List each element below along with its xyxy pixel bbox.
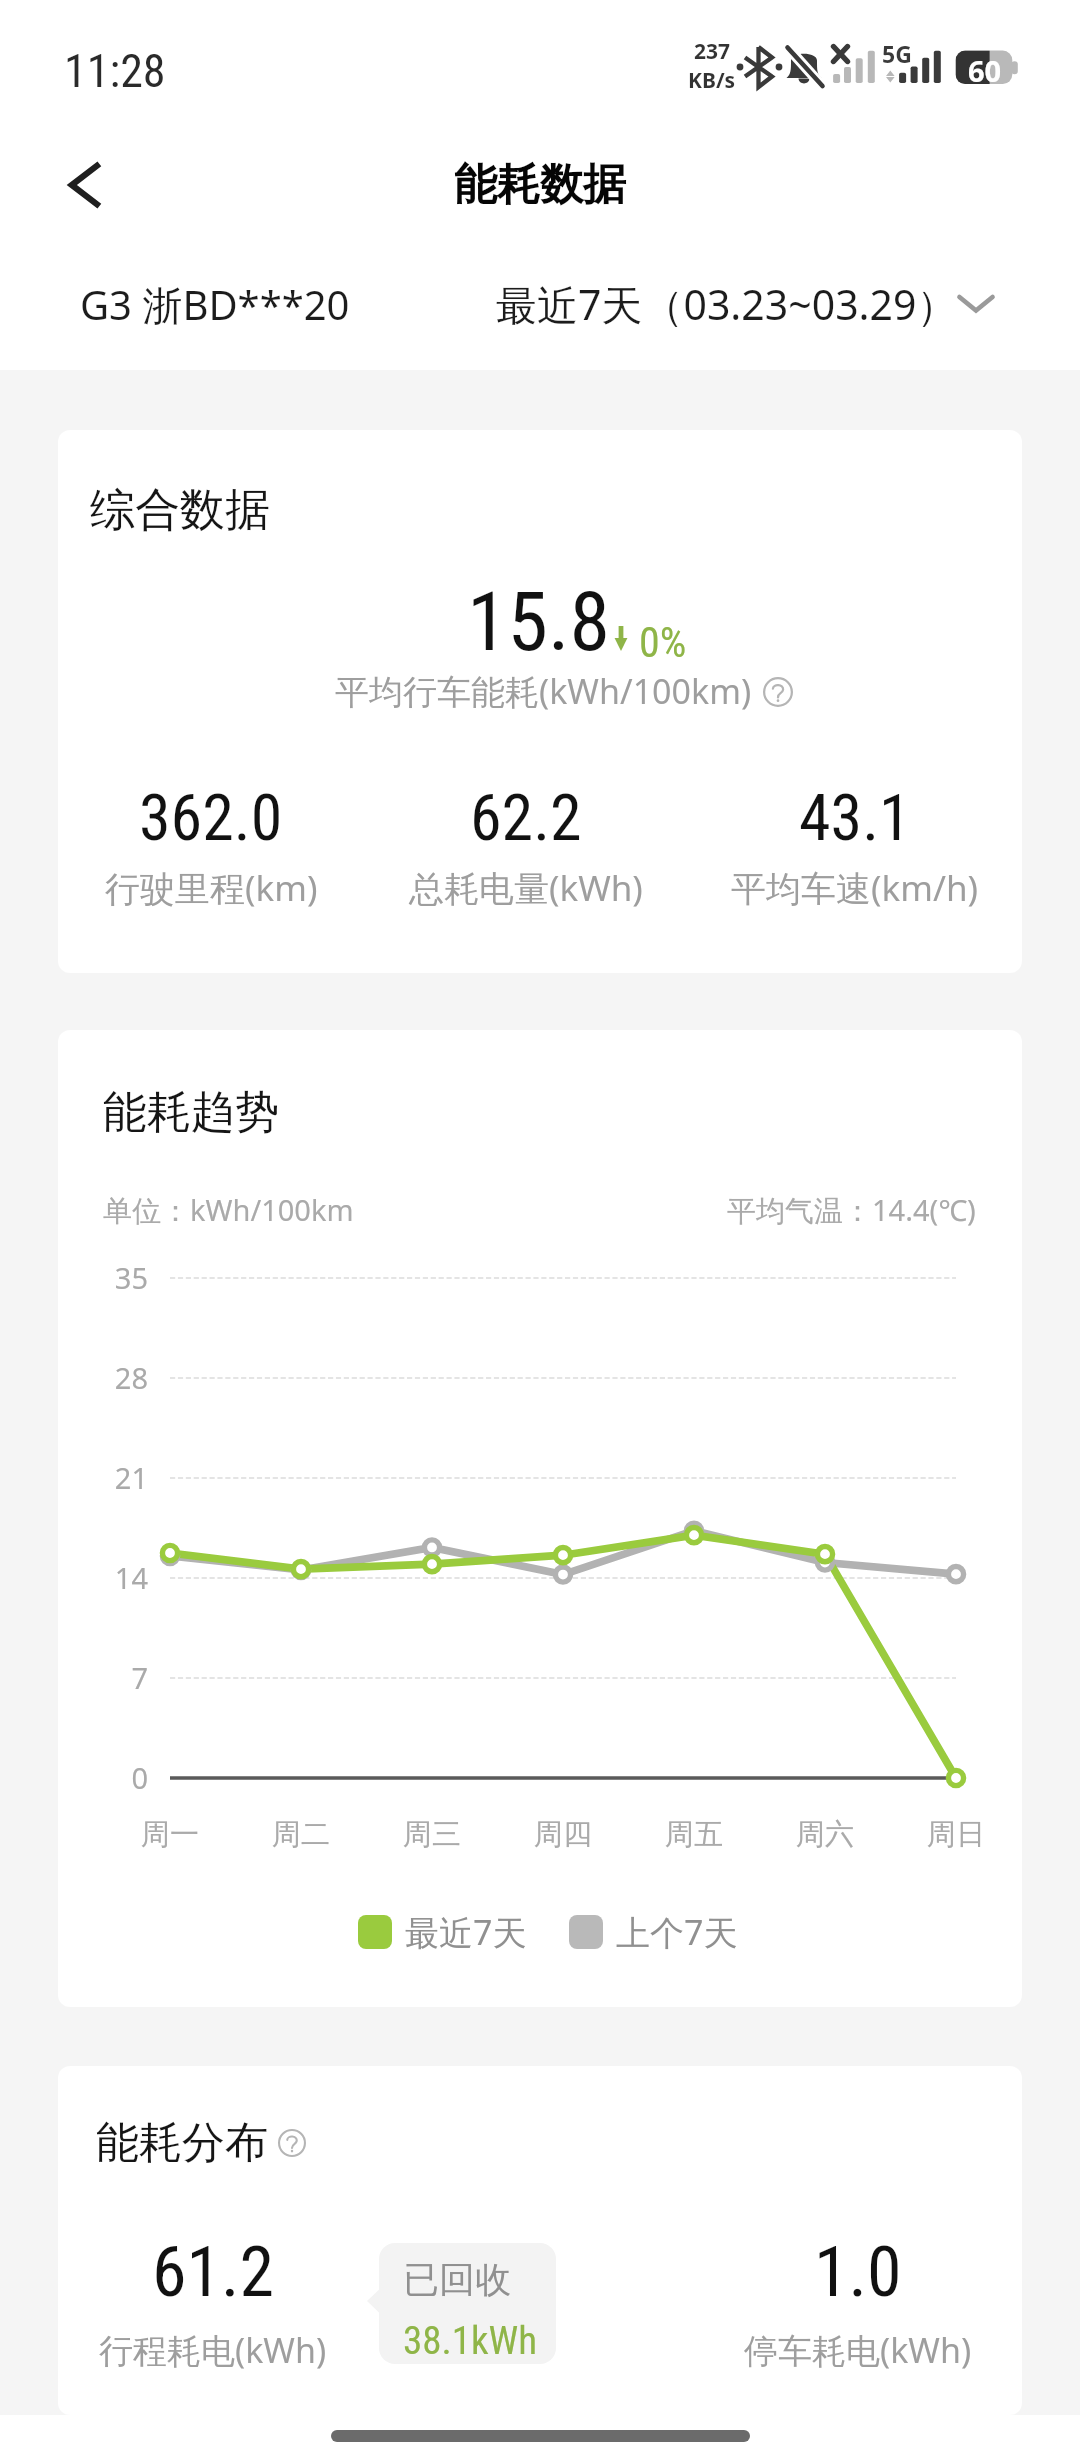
staticText: 362.0	[139, 781, 283, 856]
staticText: 周六	[796, 1816, 854, 1853]
staticText: 行程耗电(kWh)	[99, 2327, 327, 2373]
staticText: 周五	[665, 1816, 723, 1853]
button[interactable]: About average energy consumption	[753, 667, 803, 717]
staticText: 周二	[272, 1816, 330, 1853]
staticText: 停车耗电(kWh)	[744, 2327, 972, 2373]
staticText: 35	[114, 1258, 148, 1297]
staticText: 平均气温：14.4(℃)	[727, 1190, 976, 1230]
staticText: 28	[114, 1358, 148, 1397]
staticText: 周日	[927, 1816, 985, 1853]
staticText: 0	[131, 1758, 148, 1797]
staticText: 60	[968, 51, 1002, 90]
staticText: 单位：kWh/100km	[103, 1190, 354, 1230]
staticText: 平均车速(km/h)	[731, 864, 979, 912]
staticText: 平均行车能耗(kWh/100km)	[335, 668, 752, 714]
button[interactable]: 上个7天	[569, 1909, 738, 1955]
staticText: 能耗趋势	[103, 1085, 279, 1140]
staticText: 62.2	[470, 781, 582, 856]
button[interactable]: G3 浙BD***20	[80, 277, 350, 332]
staticText: 能耗数据	[454, 158, 626, 212]
staticText: 38.1kWh	[403, 2318, 538, 2364]
staticText: KB/s	[688, 66, 736, 95]
staticText: 最近7天（03.23~03.29）	[496, 276, 958, 332]
staticText: 5G	[882, 38, 912, 69]
staticText: 综合数据	[90, 482, 270, 539]
button[interactable]: 最近7天（03.23~03.29）	[496, 276, 994, 332]
staticText: 15.8	[467, 574, 611, 670]
staticText: 61.2	[152, 2231, 275, 2313]
staticText: 11:28	[64, 44, 166, 98]
staticText: 周一	[141, 1816, 199, 1853]
staticText: 总耗电量(kWh)	[409, 864, 643, 912]
button[interactable]: 最近7天	[358, 1909, 527, 1955]
button[interactable]: 已回收	[379, 2243, 556, 2364]
staticText: 0%	[639, 618, 687, 667]
staticText: 周三	[403, 1816, 461, 1853]
staticText: 行驶里程(km)	[105, 864, 318, 912]
staticText: 上个7天	[616, 1909, 738, 1955]
staticText: 能耗分布	[96, 2116, 268, 2170]
staticText: 21	[114, 1458, 148, 1497]
staticText: 已回收	[403, 2257, 511, 2302]
button[interactable]: About energy distribution	[270, 2121, 314, 2165]
staticText: 43.1	[799, 781, 911, 856]
staticText: 1.0	[814, 2231, 902, 2313]
button[interactable]: Back	[45, 138, 139, 232]
staticText: 最近7天	[405, 1909, 527, 1955]
staticText: 周四	[534, 1816, 592, 1853]
staticText: 7	[131, 1658, 148, 1697]
staticText: 237	[694, 37, 731, 66]
staticText: 14	[114, 1558, 148, 1597]
